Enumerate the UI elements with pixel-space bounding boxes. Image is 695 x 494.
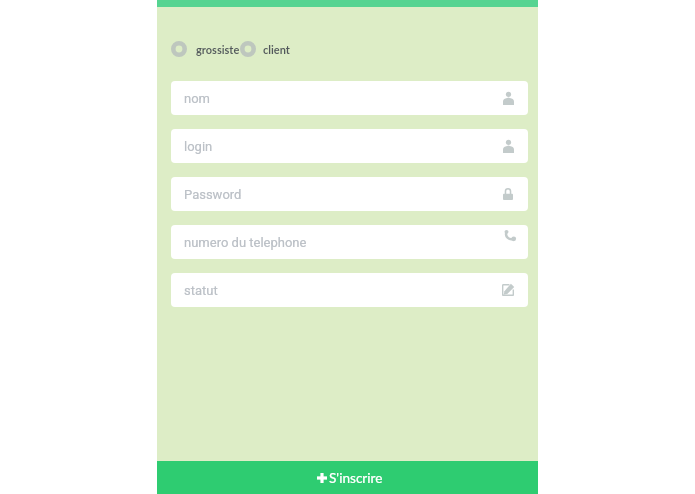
other: statut [498, 280, 518, 300]
staticText: Password [184, 187, 242, 202]
button[interactable]: login [171, 129, 528, 163]
button[interactable]: Password [171, 177, 528, 211]
button[interactable]: S'inscrire [157, 461, 538, 494]
staticText: numero du telephone [184, 235, 307, 250]
staticText: grossiste [196, 43, 240, 56]
button[interactable]: Select grossiste [171, 41, 240, 57]
staticText: nom [184, 91, 210, 106]
staticText: S'inscrire [329, 470, 383, 486]
other: login [498, 136, 518, 156]
other: Password [498, 184, 518, 204]
button[interactable]: statut [171, 273, 528, 307]
button[interactable]: nom [171, 81, 528, 115]
other: nom [498, 88, 518, 108]
staticText: client [263, 43, 290, 56]
other: numero du telephone [498, 232, 518, 252]
button[interactable]: numero du telephone [171, 225, 528, 259]
staticText: statut [184, 283, 218, 298]
staticText: login [184, 139, 213, 154]
button[interactable]: Select client [240, 41, 290, 57]
